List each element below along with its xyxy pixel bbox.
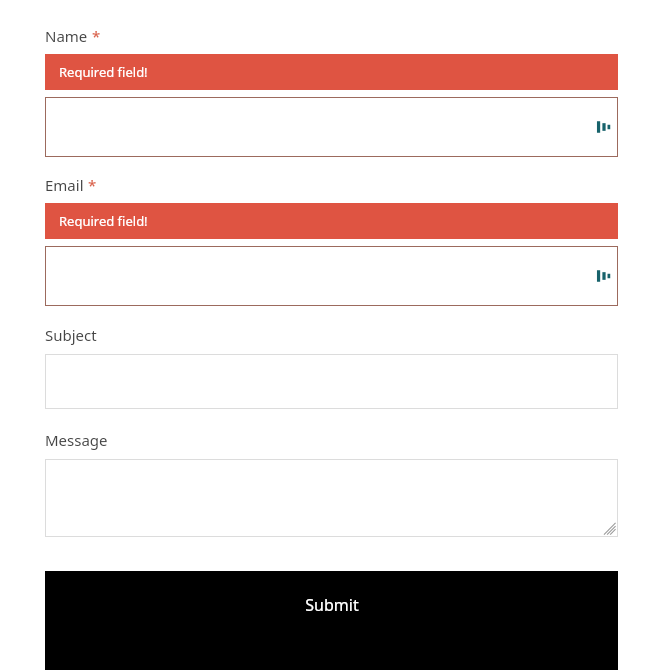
button[interactable] — [45, 354, 618, 409]
button[interactable]: Submit — [45, 571, 618, 670]
staticText: * — [92, 26, 101, 46]
staticText: Message — [45, 430, 108, 450]
other: Autofill — [596, 119, 612, 135]
staticText: Subject — [45, 325, 97, 345]
staticText: Required field! — [59, 63, 148, 81]
button[interactable] — [45, 459, 618, 537]
button[interactable]: Autofill — [45, 246, 618, 306]
staticText: Name — [45, 26, 88, 46]
staticText: Required field! — [59, 212, 148, 230]
staticText: * — [88, 175, 97, 195]
staticText: Submit — [305, 594, 359, 616]
other: Autofill — [596, 268, 612, 284]
button[interactable]: Autofill — [45, 97, 618, 157]
staticText: Email — [45, 175, 84, 195]
